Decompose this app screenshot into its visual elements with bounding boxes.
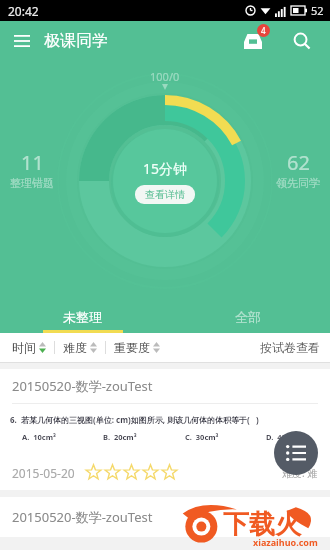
staticText: 2015-05-20: [12, 465, 75, 481]
staticText: 下载火: [223, 508, 301, 541]
button[interactable]: 重要度: [111, 337, 163, 358]
button[interactable]: 查看详情: [135, 185, 195, 204]
staticText: D. 40cm³: [266, 432, 300, 442]
staticText: 难度: [63, 340, 87, 355]
staticText: 62: [287, 149, 310, 176]
staticText: 全部: [235, 309, 261, 325]
button[interactable]: 未整理: [0, 301, 165, 333]
button[interactable]: 20150520-数学-zouTest: [0, 497, 330, 537]
staticText: xiazaihuo.com: [253, 536, 318, 548]
staticText: A. 10cm³: [22, 432, 56, 442]
button[interactable]: 按试卷查看: [250, 336, 330, 359]
staticText: B. 20cm³: [103, 432, 137, 442]
button[interactable]: 时间: [9, 337, 49, 358]
staticText: 20150520-数学-zouTest: [12, 508, 153, 526]
staticText: 未整理: [63, 309, 102, 325]
button[interactable]: 20150520-数学-zouTest: [0, 369, 330, 490]
staticText: 整理错题: [10, 176, 54, 190]
staticText: 查看详情: [145, 188, 185, 201]
staticText: 时间: [12, 340, 36, 355]
staticText: 4: [261, 25, 266, 36]
staticText: 15分钟: [143, 159, 188, 178]
staticText: 100/0: [150, 69, 180, 84]
staticText: 按试卷查看: [260, 340, 320, 355]
staticText: C. 30cm³: [185, 432, 219, 442]
staticText: 6. 若某几何体的三视图(单位: cm)如图所示, 则该几何体的体积等于( ): [10, 414, 259, 425]
button[interactable]: Search: [288, 27, 316, 55]
staticText: 20:42: [8, 3, 39, 19]
staticText: 重要度: [114, 340, 150, 355]
staticText: 极课同学: [44, 31, 108, 51]
button[interactable]: 难度: [60, 337, 100, 358]
staticText: 难度: 难: [282, 466, 318, 480]
staticText: 20150520-数学-zouTest: [12, 377, 153, 395]
button[interactable]: Menu: [8, 27, 36, 55]
button[interactable]: 全部: [165, 301, 330, 333]
button[interactable]: Inbox: [238, 26, 268, 56]
staticText: 52: [311, 3, 324, 18]
staticText: 11: [21, 149, 44, 176]
button[interactable]: List view: [274, 431, 318, 475]
staticText: 领先同学: [276, 176, 320, 190]
